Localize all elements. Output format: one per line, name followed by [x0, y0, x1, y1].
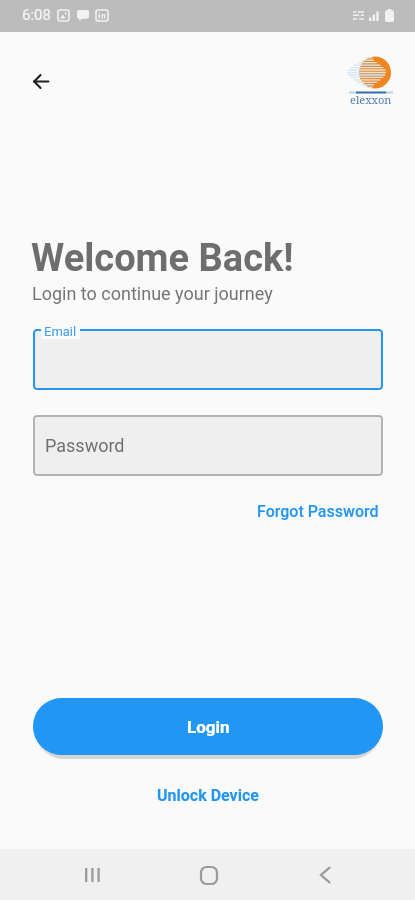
staticText: Password: [45, 435, 125, 456]
staticText: Welcome Back!: [31, 236, 294, 281]
staticText: elexxon: [350, 92, 392, 107]
staticText: 6:08: [22, 6, 51, 24]
button[interactable]: Password: [33, 415, 383, 476]
button[interactable]: Email: [33, 329, 383, 390]
button[interactable]: Forgot Password: [249, 496, 387, 527]
button[interactable]: Back: [301, 856, 349, 894]
button[interactable]: Recent apps: [68, 856, 116, 894]
staticText: Email: [44, 324, 77, 339]
button[interactable]: Login: [33, 698, 383, 755]
staticText: Login: [187, 717, 230, 737]
staticText: Forgot Password: [257, 502, 379, 521]
staticText: Login to continue your journey: [32, 283, 273, 304]
staticText: Unlock Device: [157, 786, 259, 805]
button[interactable]: Home: [185, 856, 233, 894]
button[interactable]: Back: [21, 61, 61, 101]
button[interactable]: Unlock Device: [149, 780, 267, 811]
